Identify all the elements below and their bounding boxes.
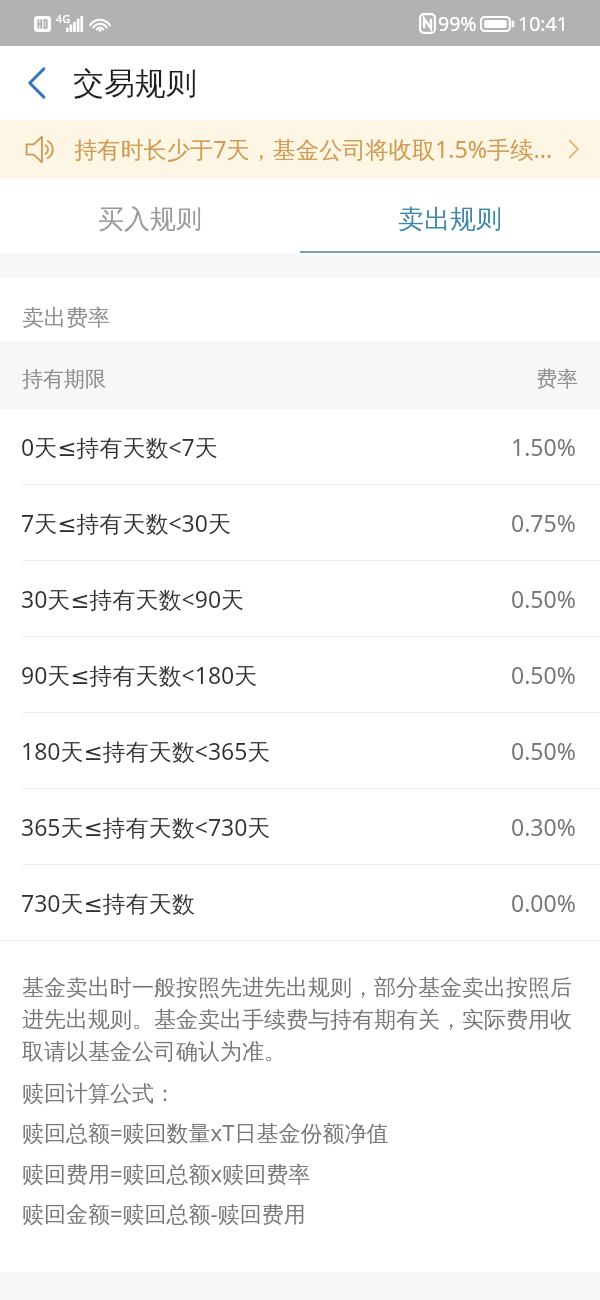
staticText: 费率 [536,366,578,392]
button[interactable]: 卖出规则 [300,178,600,253]
staticText: 基金卖出时一般按照先进先出规则，部分基金卖出按照后进先出规则。基金卖出手续费与持… [22,974,580,1066]
staticText: 0.00% [511,887,576,918]
staticText: 365天≤持有天数<730天 [21,811,271,842]
button[interactable]: 7天≤持有天数<30天 [0,485,600,560]
staticText: 180天≤持有天数<365天 [21,735,271,766]
staticText: 0.50% [511,735,576,766]
staticText: 7天≤持有天数<30天 [21,507,231,538]
button[interactable]: 730天≤持有天数 [0,865,600,940]
staticText: 卖出规则 [398,203,502,236]
button[interactable]: 买入规则 [0,178,300,253]
staticText: 0.50% [511,659,576,690]
staticText: 0天≤持有天数<7天 [21,431,218,462]
staticText: 卖出费率 [22,304,110,332]
staticText: 交易规则 [73,64,197,103]
staticText: 赎回计算公式： [22,1080,176,1108]
staticText: 1.50% [511,431,576,462]
staticText: 0.50% [511,583,576,614]
staticText: 4G [56,11,71,26]
button[interactable]: 90天≤持有天数<180天 [0,637,600,712]
staticText: 持有时长少于7天，基金公司将收取1.5%手续... [74,133,553,165]
staticText: 买入规则 [98,203,202,236]
staticText: 0.30% [511,811,576,842]
button[interactable]: Back [0,46,73,120]
button[interactable]: 30天≤持有天数<90天 [0,561,600,636]
button[interactable]: 180天≤持有天数<365天 [0,713,600,788]
staticText: 99% [438,10,477,37]
staticText: 730天≤持有天数 [21,887,195,918]
staticText: 30天≤持有天数<90天 [21,583,245,614]
staticText: 赎回总额=赎回数量xT日基金份额净值 [22,1117,389,1147]
staticText: 赎回金额=赎回总额-赎回费用 [22,1198,306,1228]
button[interactable]: 持有时长少于7天，基金公司将收取1.5%手续... [0,120,600,178]
staticText: 0.75% [511,507,576,538]
staticText: 10:41 [518,10,568,37]
staticText: 90天≤持有天数<180天 [21,659,258,690]
button[interactable]: 0天≤持有天数<7天 [0,409,600,484]
staticText: 赎回费用=赎回总额x赎回费率 [22,1158,311,1188]
button[interactable]: 365天≤持有天数<730天 [0,789,600,864]
staticText: 持有期限 [22,366,106,392]
